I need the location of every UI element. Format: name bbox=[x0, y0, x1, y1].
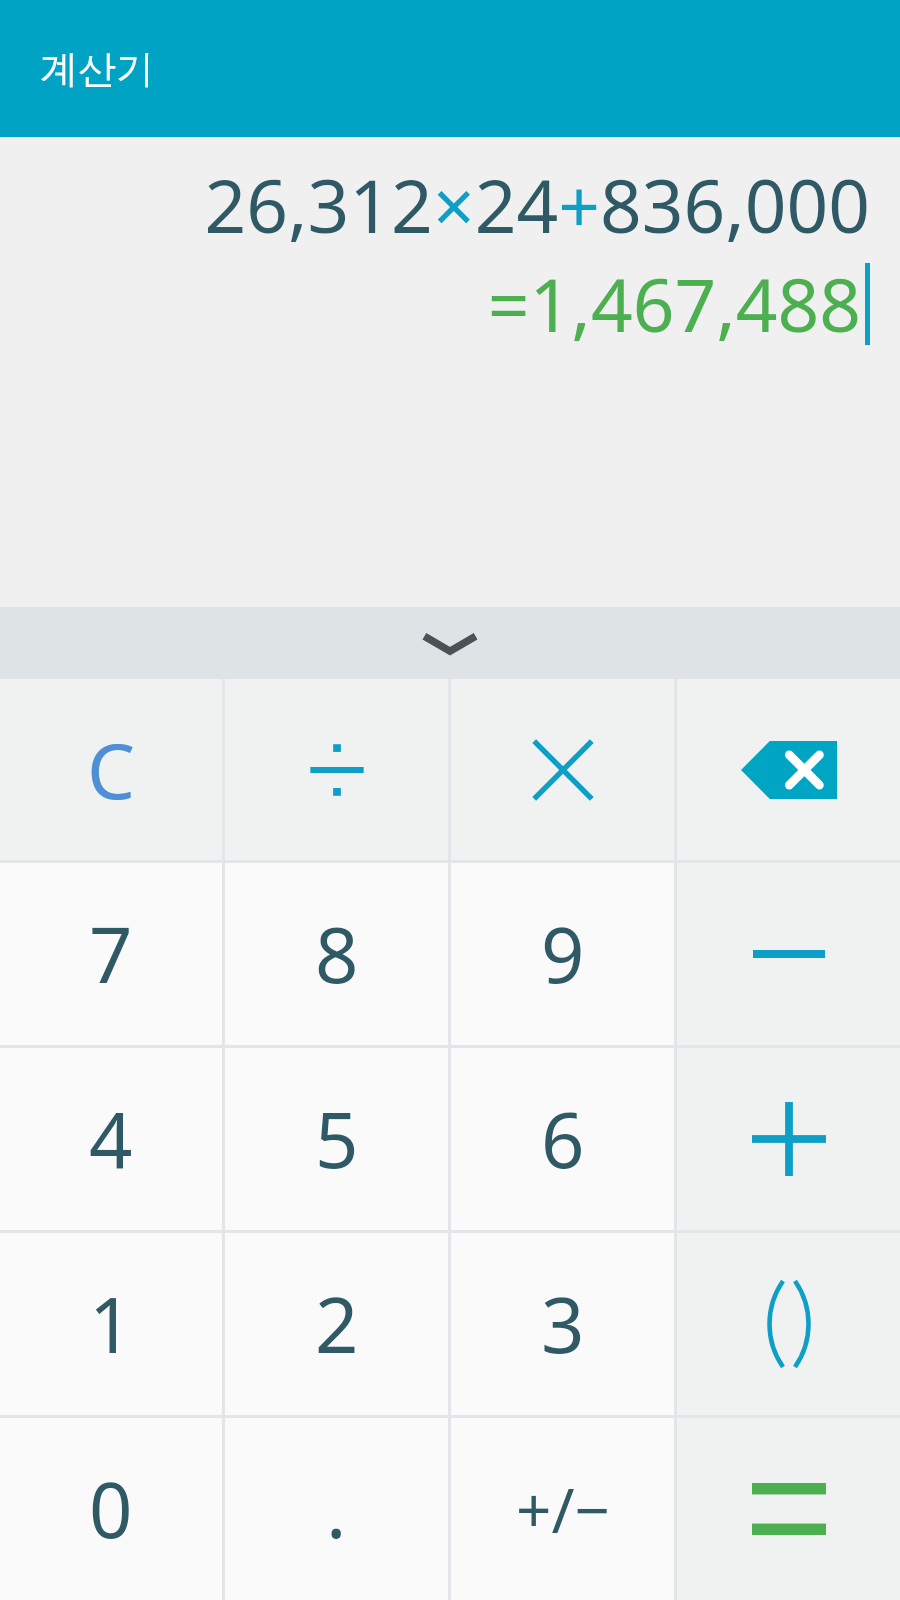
button[interactable]: 9 bbox=[451, 863, 674, 1045]
staticText: 3 bbox=[541, 1272, 585, 1376]
button[interactable]: 2 bbox=[225, 1233, 448, 1415]
staticText: +/− bbox=[516, 1467, 610, 1551]
staticText: 계산기 bbox=[40, 45, 154, 93]
button[interactable]: Clear bbox=[0, 679, 222, 860]
button[interactable]: 7 bbox=[0, 863, 222, 1045]
button[interactable]: 1 bbox=[0, 1233, 222, 1415]
button[interactable]: Backspace bbox=[677, 679, 900, 860]
staticText: 4 bbox=[89, 1087, 133, 1191]
button[interactable]: 0 bbox=[0, 1418, 222, 1600]
staticText: 8 bbox=[315, 902, 359, 1006]
staticText: 9 bbox=[541, 902, 585, 1006]
staticText: C bbox=[87, 718, 136, 822]
button[interactable]: Equals bbox=[677, 1418, 900, 1600]
button[interactable]: Operator bbox=[677, 1233, 900, 1415]
button[interactable]: 5 bbox=[225, 1048, 448, 1230]
button[interactable]: Collapse history bbox=[0, 607, 900, 679]
button[interactable]: 3 bbox=[451, 1233, 674, 1415]
button[interactable]: Operator bbox=[677, 1048, 900, 1230]
button[interactable]: 8 bbox=[225, 863, 448, 1045]
button[interactable]: Operator bbox=[677, 863, 900, 1045]
button[interactable]: +/− bbox=[451, 1418, 674, 1600]
button[interactable]: . bbox=[225, 1418, 448, 1600]
staticText: 1 bbox=[89, 1272, 133, 1376]
staticText: 7 bbox=[89, 902, 133, 1006]
button[interactable]: Multiply bbox=[451, 679, 674, 860]
button[interactable]: 6 bbox=[451, 1048, 674, 1230]
staticText: 5 bbox=[315, 1087, 359, 1191]
staticText: =1,467,488 bbox=[487, 254, 861, 353]
staticText: 2 bbox=[315, 1272, 359, 1376]
staticText: 0 bbox=[89, 1457, 133, 1561]
staticText: 26,312×24+836,000 bbox=[204, 155, 870, 254]
button[interactable]: Divide bbox=[225, 679, 448, 860]
staticText: . bbox=[326, 1457, 347, 1561]
button[interactable]: 4 bbox=[0, 1048, 222, 1230]
staticText: 6 bbox=[541, 1087, 585, 1191]
